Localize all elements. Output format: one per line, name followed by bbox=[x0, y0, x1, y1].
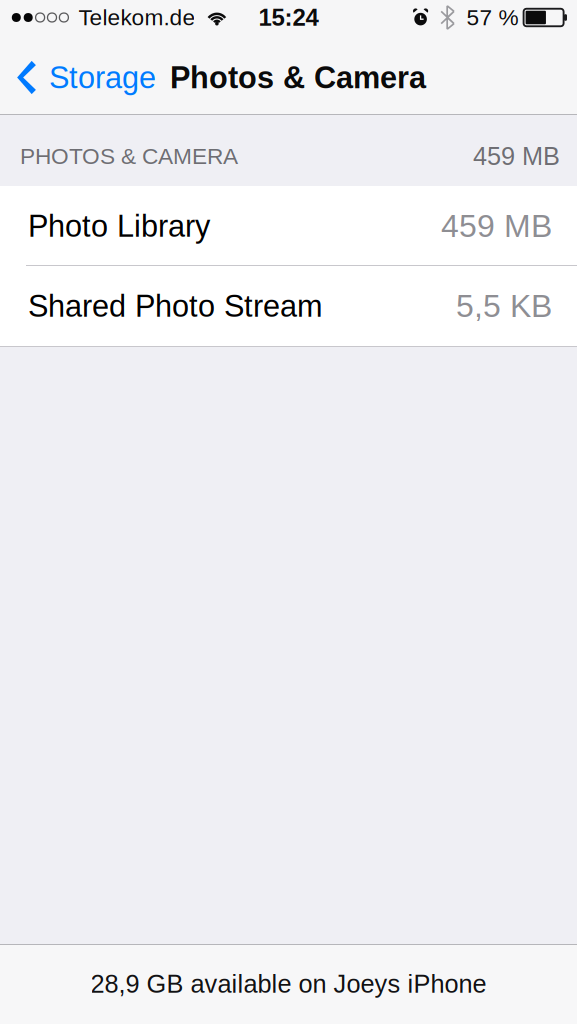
staticText: Telekom.de bbox=[78, 5, 195, 30]
staticText: Shared Photo Stream bbox=[28, 289, 323, 323]
staticText: 459 MB bbox=[473, 142, 560, 170]
staticText: 459 MB bbox=[441, 208, 552, 244]
staticText: 57 % bbox=[467, 5, 519, 30]
staticText: 15:24 bbox=[258, 4, 318, 31]
staticText: PHOTOS & CAMERA bbox=[20, 143, 238, 169]
staticText: Storage bbox=[49, 60, 156, 95]
staticText: Photo Library bbox=[28, 209, 210, 243]
staticText: 28,9 GB available on Joeys iPhone bbox=[90, 970, 486, 998]
button[interactable]: Shared Photo Stream bbox=[0, 266, 577, 346]
staticText: 5,5 KB bbox=[456, 288, 552, 324]
staticText: Photos & Camera bbox=[170, 60, 426, 95]
button[interactable]: Storage bbox=[0, 40, 162, 115]
button[interactable]: Photo Library bbox=[0, 186, 577, 266]
